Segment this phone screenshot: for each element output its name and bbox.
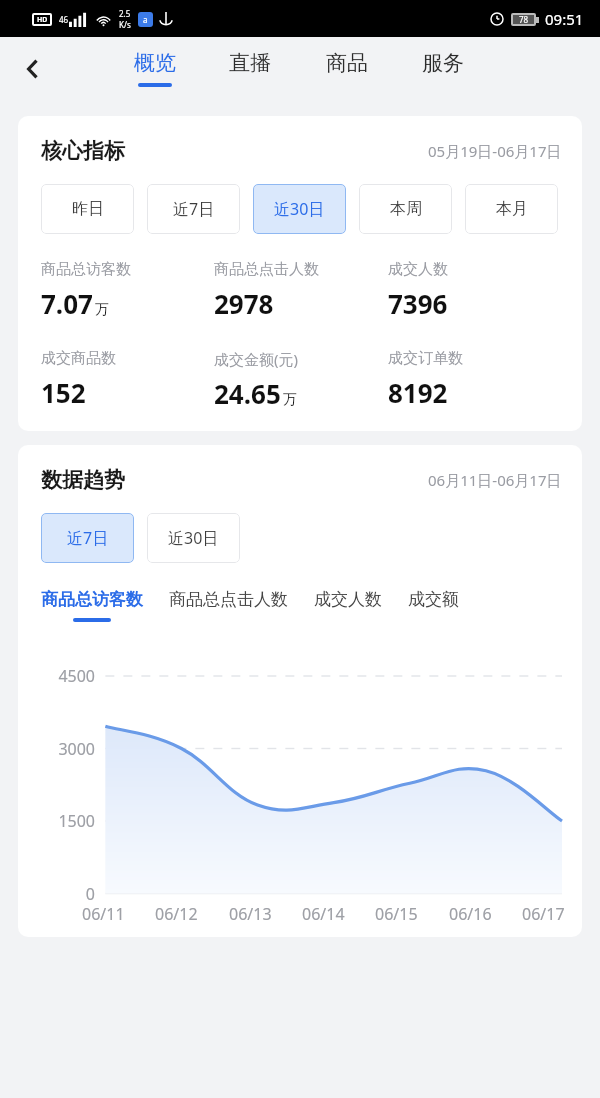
- button[interactable]: 近7日: [147, 184, 240, 234]
- staticText: 06/14: [302, 903, 345, 925]
- staticText: 直播: [229, 50, 271, 76]
- staticText: 成交人数: [314, 589, 382, 610]
- staticText: 06/15: [375, 903, 418, 925]
- staticText: 万: [95, 301, 109, 319]
- button[interactable]: 直播: [206, 37, 294, 100]
- button[interactable]: 商品: [303, 37, 391, 100]
- staticText: 商品总点击人数: [214, 260, 319, 279]
- staticText: 本月: [496, 199, 528, 219]
- staticText: 24.65: [214, 376, 281, 411]
- staticText: 服务: [422, 50, 464, 76]
- staticText: 成交订单数: [388, 349, 463, 368]
- button[interactable]: 服务: [399, 37, 487, 100]
- staticText: 商品总访客数: [41, 260, 131, 279]
- staticText: 本周: [390, 199, 422, 219]
- staticText: HD: [37, 15, 48, 25]
- button[interactable]: 近7日: [41, 513, 134, 563]
- staticText: 近30日: [168, 527, 219, 549]
- staticText: 06/16: [449, 903, 492, 925]
- staticText: 成交商品数: [41, 349, 116, 368]
- staticText: 152: [41, 375, 86, 410]
- staticText: 商品总访客数: [41, 589, 143, 610]
- button[interactable]: 近30日: [147, 513, 240, 563]
- button[interactable]: 成交额: [408, 589, 459, 622]
- staticText: 近7日: [67, 527, 109, 549]
- button[interactable]: 概览: [111, 37, 199, 100]
- staticText: 商品: [326, 50, 368, 76]
- button[interactable]: 本月: [465, 184, 558, 234]
- staticText: 核心指标: [41, 138, 125, 164]
- staticText: 商品总点击人数: [169, 589, 288, 610]
- staticText: 0: [85, 883, 95, 905]
- staticText: 46: [59, 14, 69, 25]
- staticText: 成交金额(元): [214, 349, 299, 369]
- button[interactable]: 成交人数: [314, 589, 382, 622]
- staticText: 78: [519, 14, 529, 25]
- staticText: 近7日: [173, 198, 215, 220]
- staticText: 4500: [58, 665, 95, 687]
- staticText: 06月11日-06月17日: [428, 470, 562, 490]
- button[interactable]: 本周: [359, 184, 452, 234]
- button[interactable]: 商品总点击人数: [169, 589, 288, 622]
- staticText: 8192: [388, 375, 448, 410]
- staticText: 06/13: [229, 903, 272, 925]
- staticText: 06/17: [522, 903, 565, 925]
- staticText: 近30日: [274, 198, 325, 220]
- staticText: a: [143, 14, 148, 25]
- staticText: 概览: [134, 50, 176, 76]
- staticText: 06/12: [155, 903, 198, 925]
- staticText: K/s: [119, 19, 131, 30]
- staticText: 成交额: [408, 589, 459, 610]
- button[interactable]: Back: [0, 37, 66, 100]
- staticText: 2.5: [119, 8, 131, 19]
- staticText: 昨日: [72, 199, 104, 219]
- staticText: 06/11: [82, 903, 125, 925]
- button[interactable]: 昨日: [41, 184, 134, 234]
- staticText: 1500: [58, 810, 95, 832]
- staticText: 05月19日-06月17日: [428, 141, 562, 161]
- staticText: 3000: [58, 738, 95, 760]
- staticText: 7.07: [41, 286, 93, 321]
- staticText: 成交人数: [388, 260, 448, 279]
- button[interactable]: 近30日: [253, 184, 346, 234]
- staticText: 数据趋势: [41, 467, 125, 493]
- staticText: 2978: [214, 286, 274, 321]
- staticText: 7396: [388, 286, 448, 321]
- staticText: 09:51: [545, 9, 584, 29]
- staticText: 万: [283, 391, 297, 409]
- button[interactable]: 商品总访客数: [41, 589, 143, 622]
